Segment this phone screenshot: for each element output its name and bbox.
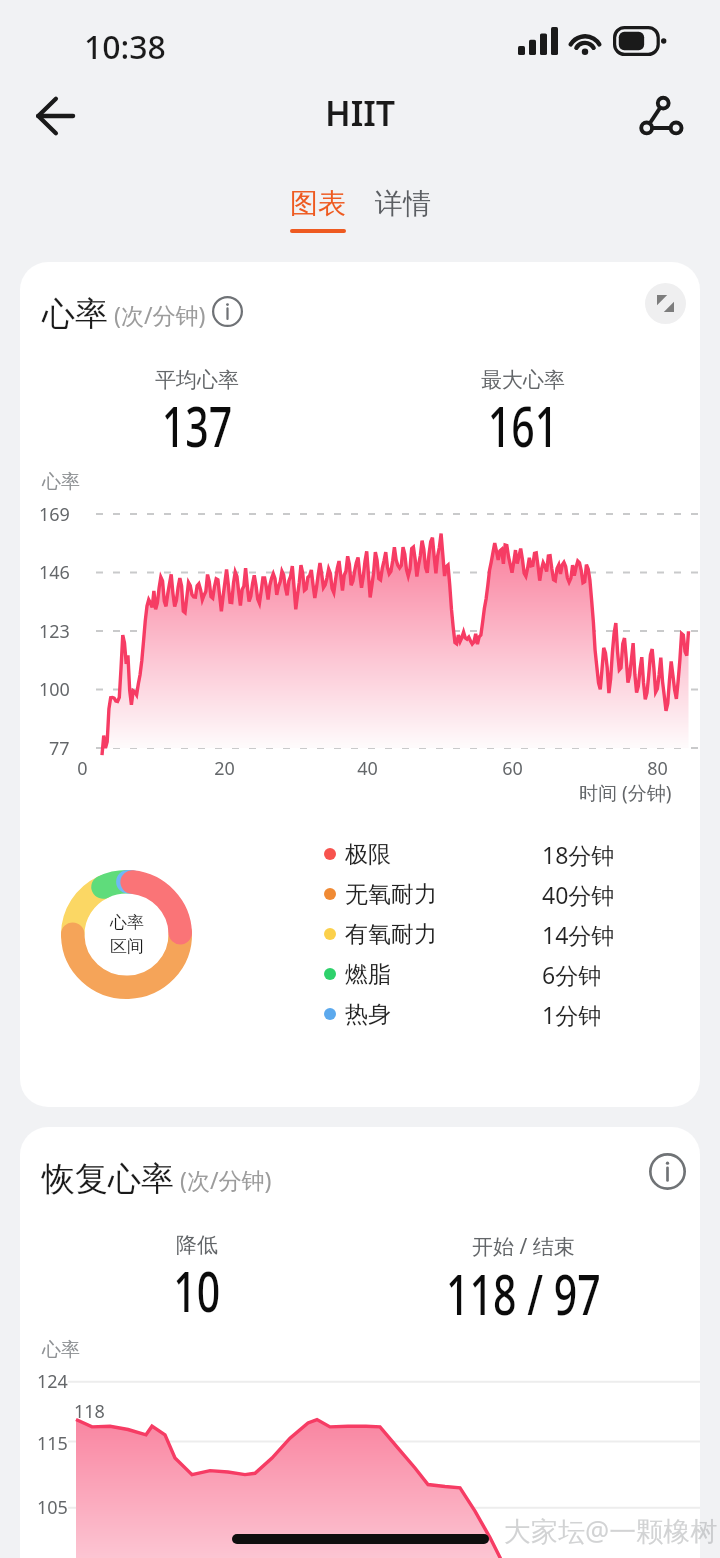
staticText: 时间 (分钟) — [579, 780, 672, 804]
staticText: 146 — [39, 560, 70, 584]
staticText: 心率 — [110, 912, 144, 933]
staticText: 123 — [39, 619, 70, 643]
staticText: 0 — [77, 756, 88, 780]
staticText: 60 — [502, 756, 523, 780]
staticText: 大家坛@一颗橡树 — [504, 1512, 718, 1549]
staticText: 40 — [357, 756, 378, 780]
staticText: 热身 — [345, 1000, 391, 1029]
staticText: 区间 — [110, 936, 144, 957]
staticText: 118 — [74, 1399, 105, 1424]
button[interactable]: Info — [206, 290, 248, 332]
staticText: 降低 — [176, 1232, 218, 1258]
staticText: 10:38 — [84, 25, 166, 69]
staticText: 124 — [37, 1369, 68, 1393]
button[interactable]: Back — [22, 80, 94, 152]
staticText: (次/分钟) — [180, 1164, 272, 1195]
staticText: 详情 — [375, 186, 431, 221]
staticText: 心率 — [42, 470, 80, 494]
button[interactable]: 详情 — [367, 186, 439, 221]
staticText: 80 — [647, 756, 668, 780]
button[interactable]: Expand chart — [645, 283, 686, 324]
staticText: 115 — [37, 1431, 68, 1455]
staticText: 最大心率 — [481, 367, 565, 393]
staticText: 平均心率 — [155, 367, 239, 393]
staticText: 极限 — [345, 840, 391, 869]
staticText: 118 / 97 — [446, 1254, 601, 1332]
staticText: 105 — [37, 1495, 68, 1519]
button[interactable]: Info — [638, 1142, 696, 1200]
staticText: 有氧耐力 — [345, 920, 437, 949]
staticText: 6分钟 — [542, 959, 602, 990]
staticText: 图表 — [290, 186, 346, 221]
staticText: 心率 — [42, 293, 108, 335]
staticText: 18分钟 — [542, 839, 615, 870]
staticText: (次/分钟) — [114, 299, 206, 330]
staticText: 169 — [39, 502, 70, 526]
staticText: 100 — [39, 677, 70, 701]
staticText: 燃脂 — [345, 960, 391, 989]
button[interactable]: Share — [624, 80, 696, 152]
staticText: 1分钟 — [542, 999, 602, 1030]
button[interactable]: 图表 — [282, 186, 354, 233]
staticText: 77 — [49, 736, 70, 760]
staticText: 14分钟 — [542, 919, 615, 950]
staticText: 161 — [488, 386, 558, 464]
staticText: 无氧耐力 — [345, 880, 437, 909]
staticText: HIIT — [325, 90, 396, 136]
staticText: 10 — [173, 1251, 221, 1329]
staticText: 心率 — [42, 1338, 80, 1362]
staticText: 137 — [162, 386, 232, 464]
staticText: 40分钟 — [542, 879, 615, 910]
staticText: 20 — [214, 756, 235, 780]
staticText: 恢复心率 — [42, 1158, 174, 1200]
staticText: 开始 / 结束 — [472, 1232, 575, 1261]
